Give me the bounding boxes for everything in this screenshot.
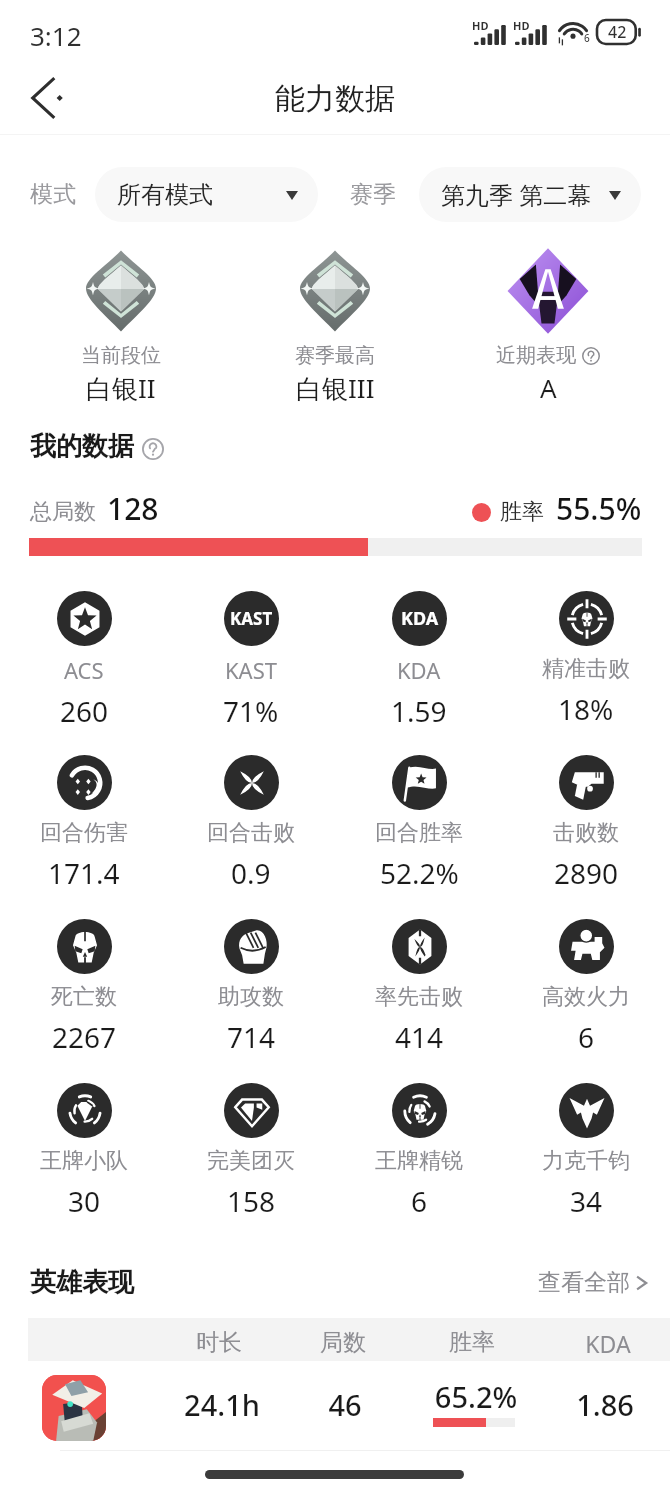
staticText: 胜率 bbox=[500, 498, 544, 526]
staticText: 近期表现 bbox=[496, 343, 576, 368]
button[interactable]: 王牌精锐 bbox=[336, 1083, 502, 1220]
button[interactable]: 第九季 第二幕 bbox=[419, 167, 641, 222]
staticText: 3:12 bbox=[30, 18, 82, 53]
staticText: 英雄表现 bbox=[30, 1266, 134, 1299]
staticText: ACS bbox=[64, 655, 104, 685]
staticText: 55.5% bbox=[556, 488, 642, 529]
staticText: 171.4 bbox=[48, 854, 120, 892]
staticText: HD bbox=[513, 18, 530, 33]
staticText: 击败数 bbox=[553, 819, 619, 847]
staticText: 所有模式 bbox=[117, 180, 286, 210]
staticText: 46 bbox=[270, 1385, 420, 1424]
staticText: 胜率 bbox=[397, 1328, 547, 1357]
staticText: 总局数 bbox=[30, 498, 96, 526]
staticText: 回合击败 bbox=[207, 819, 295, 847]
staticText: 回合伤害 bbox=[40, 819, 128, 847]
staticText: 我的数据 bbox=[30, 430, 134, 463]
staticText: 6 bbox=[578, 1018, 595, 1056]
staticText: 6 bbox=[411, 1182, 428, 1220]
button[interactable]: 击败数 bbox=[503, 755, 669, 892]
staticText: 局数 bbox=[268, 1328, 418, 1357]
button[interactable]: 完美团灭 bbox=[168, 1083, 334, 1220]
button[interactable]: 王牌小队 bbox=[1, 1083, 167, 1220]
button[interactable]: 高效火力 bbox=[503, 919, 669, 1056]
staticText: 第九季 第二幕 bbox=[441, 178, 609, 211]
staticText: 24.1h bbox=[147, 1385, 297, 1424]
button[interactable]: ACS bbox=[1, 591, 167, 730]
button[interactable]: 率先击败 bbox=[336, 919, 502, 1056]
staticText: 128 bbox=[107, 488, 159, 529]
staticText: 时长 bbox=[144, 1328, 294, 1357]
button[interactable]: 助攻数 bbox=[168, 919, 334, 1056]
button[interactable]: 回合击败 bbox=[168, 755, 334, 892]
staticText: 52.2% bbox=[380, 854, 459, 892]
staticText: KAST bbox=[225, 655, 277, 685]
staticText: 查看全部 bbox=[538, 1268, 630, 1297]
staticText: 高效火力 bbox=[542, 983, 630, 1011]
staticText: 260 bbox=[60, 692, 109, 730]
staticText: 65.2% bbox=[401, 1377, 551, 1416]
staticText: A bbox=[540, 370, 557, 405]
staticText: 0.9 bbox=[231, 854, 271, 892]
staticText: 1.86 bbox=[530, 1385, 670, 1424]
button[interactable]: 查看全部 bbox=[538, 1268, 649, 1297]
staticText: 71% bbox=[223, 692, 279, 730]
staticText: 34 bbox=[570, 1182, 603, 1220]
staticText: 王牌小队 bbox=[40, 1147, 128, 1175]
staticText: 714 bbox=[227, 1018, 276, 1056]
staticText: 白银III bbox=[296, 370, 375, 406]
button[interactable]: KAST bbox=[168, 591, 334, 730]
staticText: 2267 bbox=[52, 1018, 117, 1056]
button[interactable]: Agent bbox=[42, 1375, 106, 1441]
staticText: KDA bbox=[533, 1328, 670, 1359]
staticText: 完美团灭 bbox=[207, 1147, 295, 1175]
staticText: 30 bbox=[68, 1182, 101, 1220]
button[interactable]: 精准击败 bbox=[503, 591, 669, 728]
staticText: 赛季最高 bbox=[295, 343, 375, 368]
staticText: KDA bbox=[401, 606, 439, 631]
button[interactable]: 当前段位 bbox=[31, 250, 211, 406]
staticText: 力克千钧 bbox=[542, 1147, 630, 1175]
button[interactable]: 赛季最高 bbox=[245, 250, 425, 406]
staticText: 42 bbox=[608, 21, 627, 43]
staticText: 王牌精锐 bbox=[375, 1147, 463, 1175]
button[interactable]: 回合胜率 bbox=[336, 755, 502, 892]
button[interactable]: 死亡数 bbox=[1, 919, 167, 1056]
staticText: 精准击败 bbox=[542, 655, 630, 683]
staticText: 死亡数 bbox=[51, 983, 117, 1011]
staticText: HD bbox=[472, 18, 489, 33]
staticText: 1.59 bbox=[391, 692, 447, 730]
staticText: 18% bbox=[558, 690, 614, 728]
staticText: 158 bbox=[227, 1182, 276, 1220]
button[interactable]: 力克千钧 bbox=[503, 1083, 669, 1220]
button[interactable]: 近期表现 bbox=[458, 250, 638, 405]
staticText: 模式 bbox=[30, 180, 76, 209]
staticText: 能力数据 bbox=[275, 80, 395, 118]
button[interactable]: 回合伤害 bbox=[1, 755, 167, 892]
staticText: 赛季 bbox=[350, 180, 396, 209]
button[interactable]: KDA bbox=[336, 591, 502, 730]
staticText: 414 bbox=[395, 1018, 444, 1056]
staticText: KAST bbox=[230, 607, 273, 630]
staticText: 率先击败 bbox=[375, 983, 463, 1011]
staticText: 助攻数 bbox=[218, 983, 284, 1011]
staticText: 2890 bbox=[554, 854, 619, 892]
staticText: KDA bbox=[397, 655, 441, 685]
staticText: 回合胜率 bbox=[375, 819, 463, 847]
staticText: 当前段位 bbox=[81, 343, 161, 368]
staticText: 白银II bbox=[86, 370, 156, 406]
button[interactable]: Back bbox=[16, 68, 76, 128]
staticText: 6 bbox=[584, 31, 590, 45]
button[interactable]: 所有模式 bbox=[95, 167, 318, 222]
